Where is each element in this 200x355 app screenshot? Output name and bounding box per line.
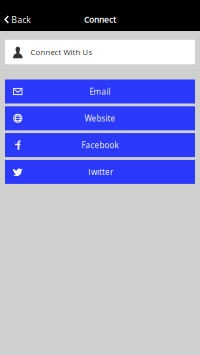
staticText: Facebook — [81, 140, 118, 151]
button[interactable]: Email — [5, 79, 195, 103]
button[interactable]: Twitter — [5, 160, 195, 184]
staticText: Website — [84, 113, 115, 124]
staticText: Connect With Us — [31, 47, 93, 57]
staticText: Email — [89, 86, 110, 97]
staticText: Back — [11, 13, 31, 25]
staticText: Twitter — [87, 166, 113, 177]
button[interactable]: Facebook — [5, 133, 195, 157]
button[interactable]: Website — [5, 106, 195, 130]
staticText: Connect — [84, 14, 116, 25]
button[interactable]: Back — [0, 8, 38, 31]
